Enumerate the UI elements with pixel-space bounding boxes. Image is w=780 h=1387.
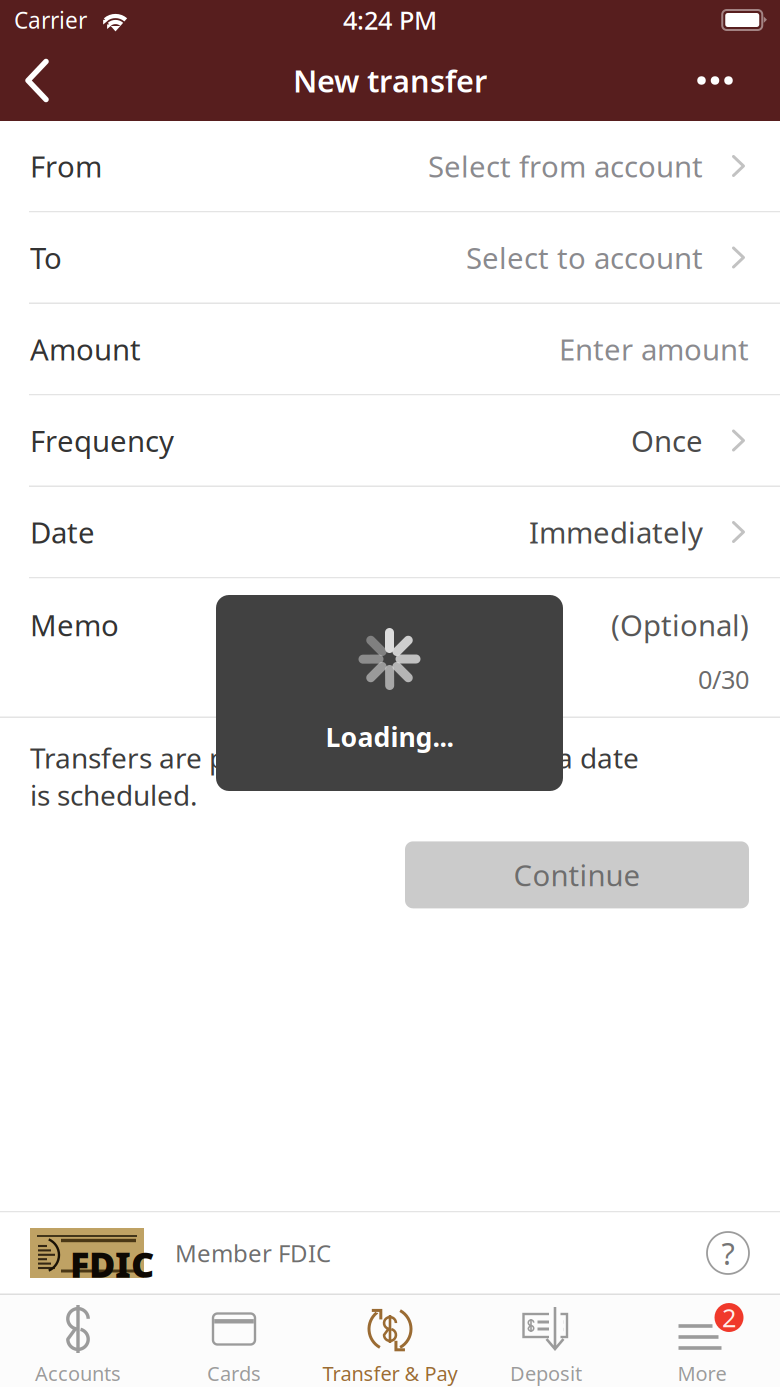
button[interactable]: Memo [0,578,780,716]
staticText: Once [631,421,703,460]
staticText: Cards [207,1360,261,1387]
staticText: Member FDIC [175,1237,331,1269]
staticText: Loading... [325,719,453,754]
staticText: Enter amount [559,329,749,368]
button[interactable]: Date [0,487,780,577]
staticText: Frequency [30,421,174,460]
staticText: From [30,146,102,185]
staticText: 0/30 [698,662,749,696]
staticText: To [30,238,62,277]
staticText: Carrier [14,5,87,35]
button[interactable]: Deposit [468,1295,624,1387]
staticText: Select to account [466,238,703,277]
button[interactable]: More options [661,40,780,121]
button[interactable]: Continue [405,841,749,908]
staticText: Date [30,512,95,551]
button[interactable]: Amount [0,304,780,394]
staticText: ? [721,1233,734,1273]
button[interactable]: Back [0,40,84,121]
button[interactable]: To [0,212,780,302]
button[interactable]: From [0,121,780,211]
staticText: Accounts [35,1360,121,1387]
button[interactable]: Transfer & Pay [312,1295,468,1387]
staticText: 4:24 PM [343,3,437,37]
staticText: Immediately [529,512,703,551]
staticText: Amount [30,329,141,368]
staticText: More [677,1360,726,1387]
staticText: New transfer [293,60,487,101]
staticText: Deposit [510,1360,582,1387]
staticText: Select from account [428,146,703,185]
staticText: Memo [30,605,119,644]
staticText: Transfers are processed instantly unless… [30,739,639,813]
staticText: Transfer & Pay [322,1360,457,1387]
staticText: FDIC [70,1240,154,1288]
button[interactable]: Help [707,1232,749,1274]
staticText: (Optional) [611,605,749,644]
staticText: Continue [513,855,640,894]
button[interactable]: Frequency [0,395,780,485]
button[interactable]: Accounts [0,1295,156,1387]
button[interactable]: 2 [624,1295,780,1387]
staticText: 2 [722,1301,736,1334]
button[interactable]: Cards [156,1295,312,1387]
